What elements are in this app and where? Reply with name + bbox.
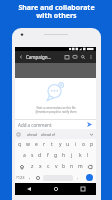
staticText: ?123 (16, 175, 25, 180)
staticText: Campaign... (26, 54, 52, 60)
staticText: c (47, 163, 50, 170)
button[interactable]: More suggestions (87, 130, 96, 139)
staticText: ahead (27, 132, 37, 137)
staticText: u (66, 141, 70, 148)
button[interactable]: k (76, 150, 84, 161)
staticText: e (35, 141, 38, 148)
button[interactable]: g (52, 150, 60, 161)
button[interactable]: u (64, 139, 72, 150)
staticText: h (62, 152, 66, 159)
staticText: b (62, 163, 66, 170)
button[interactable]: Emoji (34, 172, 42, 183)
button[interactable]: d (36, 150, 44, 161)
staticText: s (31, 152, 34, 159)
button[interactable]: Share (63, 51, 71, 63)
button[interactable]: b (60, 161, 68, 172)
button[interactable]: c (44, 161, 52, 172)
button[interactable]: a (20, 150, 28, 161)
button[interactable]: Recents (69, 183, 96, 195)
staticText: g (54, 152, 58, 159)
button[interactable]: Home (42, 183, 69, 195)
button[interactable]: s (28, 150, 36, 161)
staticText: y (59, 141, 62, 148)
staticText: w (26, 141, 30, 148)
button[interactable]: Enter (82, 172, 96, 183)
button[interactable]: i (72, 139, 80, 150)
button[interactable]: y (56, 139, 64, 150)
button[interactable]: Back (15, 183, 42, 195)
staticText: Share and collaborate with others (18, 3, 95, 20)
button[interactable]: m (76, 161, 84, 172)
staticText: Add a comment (18, 122, 52, 128)
button[interactable]: Backspace (84, 161, 96, 172)
button[interactable]: Back (15, 51, 26, 63)
button[interactable]: l (84, 150, 92, 161)
button[interactable]: t (48, 139, 56, 150)
button[interactable]: h (60, 150, 68, 161)
staticText: k (79, 152, 82, 159)
staticText: n (70, 163, 74, 170)
button[interactable]: More (87, 51, 95, 63)
button[interactable]: w (24, 139, 32, 150)
staticText: r (43, 141, 46, 148)
staticText: i (75, 141, 77, 148)
staticText: ahead of news (41, 132, 63, 137)
button[interactable]: . (74, 172, 82, 183)
staticText: Start a conversation on this file @menti… (35, 106, 77, 114)
staticText: q (18, 141, 22, 148)
button[interactable]: z (28, 161, 36, 172)
button[interactable]: ?123 (15, 172, 26, 183)
button[interactable]: n (68, 161, 76, 172)
staticText: t (51, 141, 53, 148)
button[interactable]: v (52, 161, 60, 172)
button[interactable]: e (32, 139, 40, 150)
button[interactable]: x (36, 161, 44, 172)
staticText: , (29, 174, 31, 181)
button[interactable]: Search (79, 51, 87, 63)
button[interactable]: Send (85, 120, 94, 129)
button[interactable]: o (80, 139, 88, 150)
staticText: f (47, 152, 49, 159)
button[interactable]: q (15, 139, 24, 150)
staticText: a (23, 152, 26, 159)
button[interactable]: , (26, 172, 34, 183)
button[interactable]: Comment (71, 51, 79, 63)
staticText: v (55, 163, 58, 170)
staticText: p (90, 141, 94, 148)
button[interactable]: j (68, 150, 76, 161)
staticText: z (31, 163, 34, 170)
staticText: l (87, 152, 89, 159)
staticText: m (78, 163, 83, 170)
staticText: d (38, 152, 42, 159)
button[interactable]: f (44, 150, 52, 161)
staticText: x (39, 163, 42, 170)
staticText: . (77, 174, 79, 181)
button[interactable]: p (88, 139, 96, 150)
button[interactable]: Add a comment (15, 120, 96, 129)
button[interactable]: ahead (22, 129, 41, 139)
button[interactable]: Clipboard (15, 131, 22, 138)
staticText: j (71, 152, 73, 159)
button[interactable]: Shift (15, 161, 28, 172)
button[interactable]: r (40, 139, 48, 150)
button[interactable]: ahead of news (41, 129, 63, 139)
staticText: o (82, 141, 86, 148)
